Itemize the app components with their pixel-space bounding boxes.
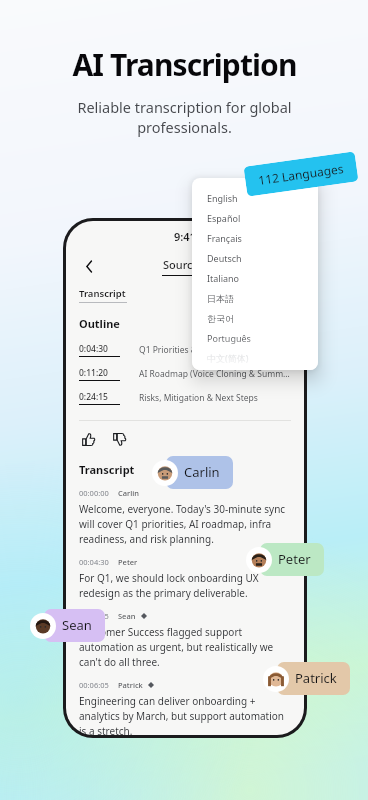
button[interactable]: 中文(简体) [207,348,318,368]
staticText: 0:04:30 [79,343,108,355]
staticText: 00:00:00 [79,488,109,498]
staticText: Transcript [79,462,135,477]
button[interactable]: English [207,188,318,208]
staticText: 9:41 [174,229,196,244]
staticText: 中文(简体) [207,352,249,364]
staticText: 00:05:15 [79,611,109,621]
button[interactable]: Transcript [79,287,127,303]
button[interactable]: 日本語 [207,288,318,308]
staticText: Italiano [207,272,240,284]
button[interactable]: Sean [44,609,105,642]
button[interactable]: Back [79,256,99,276]
staticText: Patrick [118,680,143,690]
button[interactable]: Peter [260,543,324,576]
staticText: Welcome, everyone. Today's 30-minute syn… [79,502,291,546]
staticText: Peter [278,550,311,568]
button[interactable]: Like [79,430,97,448]
staticText: 112 Languages [257,160,345,188]
staticText: Patrick [295,669,337,687]
staticText: Español [207,212,241,224]
button[interactable]: 한국어 [207,308,318,328]
staticText: 00:04:30 [79,557,109,567]
staticText: AI Transcription [72,44,297,85]
staticText: Risks, Mitigation & Next Steps [139,392,258,404]
staticText: Sean [118,611,136,621]
staticText: Carlin [184,463,220,481]
staticText: Português [207,332,251,344]
staticText: Deutsch [207,252,242,264]
staticText: Sources [163,257,205,272]
staticText: 0:24:15 [79,391,108,403]
staticText: Français [207,232,242,244]
staticText: For Q1, we should lock onboarding UX red… [79,571,291,600]
staticText: 한국어 [207,313,234,324]
staticText: 0:11:20 [79,367,108,379]
staticText: Reliable transcription for global profes… [77,97,292,138]
button[interactable]: Português [207,328,318,348]
staticText: Outline [79,316,120,331]
button[interactable]: Français [207,228,318,248]
button[interactable]: Italiano [207,268,318,288]
staticText: 00:06:05 [79,680,109,690]
staticText: AI Roadmap (Voice Cloning & Summariza... [139,368,291,380]
button[interactable]: Español [207,208,318,228]
staticText: Peter [118,557,138,567]
staticText: Customer Success flagged support automat… [79,625,291,669]
button[interactable]: Sources [162,257,206,276]
staticText: Engineering can deliver onboarding + ana… [79,694,291,735]
staticText: Q1 Priorities & Feature Scope [139,344,256,356]
button[interactable]: Dislike [110,430,128,448]
staticText: Carlin [118,488,139,498]
button[interactable]: Patrick [277,662,350,695]
button[interactable]: Carlin [166,456,233,489]
staticText: English [207,192,238,204]
button[interactable]: 112 Languages [243,151,359,197]
staticText: Transcript [79,287,126,300]
staticText: Sean [62,616,92,634]
staticText: 日本語 [207,293,234,304]
button[interactable]: Deutsch [207,248,318,268]
